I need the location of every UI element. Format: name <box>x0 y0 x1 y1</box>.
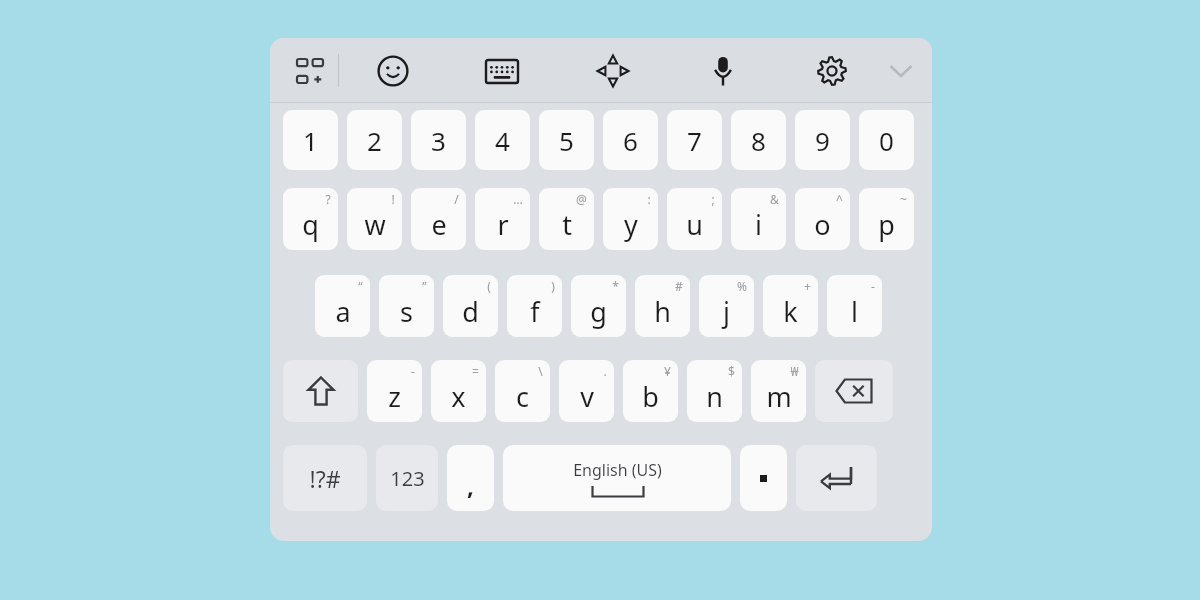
staticText: n <box>706 378 723 415</box>
button[interactable]: w <box>347 188 402 250</box>
button[interactable]: 5 <box>539 110 594 170</box>
staticText: v <box>580 378 594 415</box>
button[interactable]: 6 <box>603 110 658 170</box>
staticText: = <box>472 363 479 379</box>
staticText: o <box>814 206 831 243</box>
button[interactable]: Hide keyboard <box>883 55 919 87</box>
button[interactable]: Keyboard layout <box>479 51 525 91</box>
staticText: 7 <box>687 123 702 158</box>
staticText: ^ <box>836 191 843 207</box>
staticText: i <box>755 206 762 243</box>
button[interactable]: h <box>635 275 690 337</box>
staticText: 1 <box>303 123 318 158</box>
staticText: 0 <box>879 123 894 158</box>
button[interactable]: v <box>559 360 614 422</box>
button[interactable]: d <box>443 275 498 337</box>
staticText: s <box>400 293 413 330</box>
button[interactable]: 2 <box>347 110 402 170</box>
button[interactable]: b <box>623 360 678 422</box>
button[interactable]: 8 <box>731 110 786 170</box>
button[interactable]: Space, English (US) <box>503 445 731 511</box>
button[interactable]: Enter <box>796 445 877 511</box>
staticText: 2 <box>367 123 382 158</box>
staticText: r <box>497 206 509 243</box>
button[interactable]: 7 <box>667 110 722 170</box>
staticText: q <box>302 206 319 243</box>
staticText: 5 <box>559 123 574 158</box>
button[interactable]: q <box>283 188 338 250</box>
staticText: t <box>562 206 572 243</box>
staticText: 8 <box>751 123 766 158</box>
staticText: & <box>770 191 779 207</box>
staticText: m <box>766 378 792 415</box>
staticText: j <box>723 293 730 330</box>
staticText: 9 <box>815 123 830 158</box>
staticText: ~ <box>900 191 907 207</box>
staticText: y <box>624 206 638 243</box>
staticText: / <box>454 191 459 207</box>
button[interactable]: Shift <box>283 360 358 422</box>
staticText: : <box>647 191 651 207</box>
button[interactable]: o <box>795 188 850 250</box>
button[interactable]: u <box>667 188 722 250</box>
button[interactable]: 9 <box>795 110 850 170</box>
staticText: f <box>530 293 540 330</box>
staticText: k <box>783 293 798 330</box>
staticText: ; <box>711 191 715 207</box>
staticText: 3 <box>431 123 446 158</box>
staticText: ¥ <box>664 363 671 379</box>
staticText: ? <box>325 191 331 207</box>
staticText: ( <box>487 278 491 294</box>
button[interactable]: n <box>687 360 742 422</box>
staticText: 123 <box>390 465 425 492</box>
button[interactable]: Backspace <box>815 360 893 422</box>
button[interactable]: g <box>571 275 626 337</box>
button[interactable]: i <box>731 188 786 250</box>
button[interactable]: Emoji <box>370 51 416 91</box>
button[interactable]: e <box>411 188 466 250</box>
staticText: u <box>686 206 703 243</box>
button[interactable]: r <box>475 188 530 250</box>
staticText: l <box>851 293 858 330</box>
button[interactable]: 123 <box>376 445 438 511</box>
button[interactable]: 3 <box>411 110 466 170</box>
button[interactable]: !?# <box>283 445 367 511</box>
staticText: 6 <box>623 123 638 158</box>
staticText: ₩ <box>790 363 799 379</box>
staticText: !?# <box>309 463 341 494</box>
staticText: English (US) <box>573 459 662 481</box>
button[interactable]: 4 <box>475 110 530 170</box>
button[interactable]: f <box>507 275 562 337</box>
button[interactable]: z <box>367 360 422 422</box>
button[interactable]: 1 <box>283 110 338 170</box>
staticText: p <box>878 206 895 243</box>
button[interactable]: Cursor control <box>590 51 636 91</box>
button[interactable]: m <box>751 360 806 422</box>
button[interactable]: j <box>699 275 754 337</box>
button[interactable]: Voice input <box>700 51 746 91</box>
staticText: g <box>590 293 607 330</box>
button[interactable]: c <box>495 360 550 422</box>
button[interactable] <box>740 445 787 511</box>
staticText: ! <box>391 191 395 207</box>
button[interactable]: a <box>315 275 370 337</box>
staticText: - <box>871 278 875 294</box>
button[interactable]: p <box>859 188 914 250</box>
button[interactable]: y <box>603 188 658 250</box>
staticText: c <box>516 378 529 415</box>
staticText: x <box>451 378 466 415</box>
button[interactable]: t <box>539 188 594 250</box>
staticText: e <box>431 206 447 243</box>
button[interactable]: Add sticker <box>288 56 332 86</box>
staticText: - <box>411 363 415 379</box>
staticText: + <box>804 278 811 294</box>
button[interactable]: , <box>447 445 494 511</box>
button[interactable]: x <box>431 360 486 422</box>
button[interactable]: s <box>379 275 434 337</box>
button[interactable]: l <box>827 275 882 337</box>
button[interactable]: 0 <box>859 110 914 170</box>
staticText: $ <box>728 363 735 379</box>
staticText: h <box>654 293 671 330</box>
button[interactable]: k <box>763 275 818 337</box>
button[interactable]: Settings <box>809 51 855 91</box>
